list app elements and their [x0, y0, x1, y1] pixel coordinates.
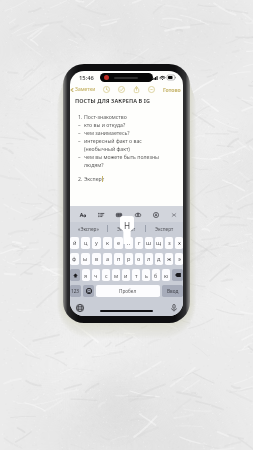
staticText: – [78, 153, 81, 160]
button[interactable]: Table [113, 209, 124, 220]
button[interactable]: Change keyboard [74, 302, 85, 313]
button[interactable]: ж [165, 253, 173, 265]
button[interactable]: н [125, 237, 133, 249]
staticText: л [147, 255, 151, 263]
staticText: – [78, 137, 81, 144]
button[interactable]: д [155, 253, 163, 265]
staticText: а [106, 255, 110, 263]
button[interactable]: я [82, 269, 90, 281]
button[interactable]: л [145, 253, 153, 265]
button[interactable]: а [103, 253, 112, 265]
button[interactable]: ш [145, 237, 153, 249]
button[interactable]: «Экспер» [70, 222, 107, 235]
button[interactable]: м [112, 269, 120, 281]
staticText: ы [83, 255, 88, 263]
button[interactable]: Backspace [172, 269, 183, 281]
button[interactable]: Готово [162, 85, 182, 94]
staticText: е [117, 239, 121, 247]
button[interactable]: Ввод [162, 285, 183, 297]
button[interactable]: у [92, 237, 101, 249]
staticText: чем вы можете быть полезны [84, 153, 160, 160]
staticText: 15:46 [79, 74, 94, 82]
button[interactable]: т [132, 269, 140, 281]
staticText: с [105, 272, 108, 279]
button[interactable]: Share [132, 85, 141, 94]
staticText: ш [146, 239, 152, 247]
button[interactable]: Text format [77, 209, 88, 220]
button[interactable]: в [92, 253, 101, 265]
button[interactable]: Checklist [95, 209, 106, 220]
staticText: «Экспер» [78, 226, 99, 232]
staticText: людям? [84, 161, 104, 168]
button[interactable]: Shift [70, 269, 80, 281]
staticText: х [178, 239, 181, 247]
button[interactable]: Emoji [83, 285, 94, 297]
staticText: в [95, 255, 99, 263]
button[interactable]: г [135, 237, 143, 249]
staticText: Эксперт [155, 226, 174, 232]
staticText: ф [72, 255, 77, 263]
staticText: ц [84, 239, 88, 247]
staticText: н [127, 239, 131, 247]
staticText: 123 [71, 288, 80, 294]
button[interactable]: Эксперт [146, 222, 183, 235]
button[interactable]: More options [147, 85, 156, 94]
staticText: з [168, 239, 171, 247]
button[interactable]: Checklist [117, 85, 126, 94]
button[interactable]: ф [70, 253, 79, 265]
button[interactable]: п [114, 253, 123, 265]
button[interactable]: Dictation [168, 302, 179, 313]
button[interactable]: Camera [132, 209, 143, 220]
staticText: т [135, 272, 138, 279]
staticText: у [95, 239, 98, 247]
staticText: к [106, 239, 109, 247]
staticText: Пробел [119, 288, 137, 294]
button[interactable]: з [165, 237, 173, 249]
button[interactable]: х [175, 237, 183, 249]
staticText: интересный факт о вас [84, 137, 142, 144]
staticText: Н [124, 220, 131, 231]
staticText: кто вы и откуда? [84, 121, 126, 128]
staticText: э [178, 255, 181, 263]
staticText: 1. [78, 113, 83, 120]
button[interactable]: о [135, 253, 143, 265]
staticText: 2. [78, 175, 83, 182]
button[interactable]: Undo [102, 85, 111, 94]
button[interactable]: й [70, 237, 79, 249]
button[interactable]: Эксперт [108, 222, 145, 235]
staticText: – [78, 121, 81, 128]
button[interactable]: э [175, 253, 183, 265]
staticText: й [73, 239, 77, 247]
staticText: я [84, 272, 88, 279]
staticText: Эксперт [117, 226, 136, 232]
staticText: Пост-знакомство [84, 113, 127, 120]
button[interactable]: щ [155, 237, 163, 249]
button[interactable]: Пробел [96, 285, 160, 297]
staticText: д [157, 255, 161, 263]
button[interactable]: ц [81, 237, 90, 249]
button[interactable]: Close keyboard [168, 209, 179, 220]
button[interactable]: ь [142, 269, 150, 281]
staticText: г [138, 239, 141, 247]
button[interactable]: 123 [70, 285, 81, 297]
staticText: б [154, 272, 158, 279]
button[interactable]: ч [92, 269, 100, 281]
staticText: ж [167, 255, 172, 263]
button[interactable]: и [122, 269, 130, 281]
staticText: р [127, 255, 131, 263]
staticText: ПОСТЫ ДЛЯ ЗАКРЕПА В IG [75, 97, 151, 104]
button[interactable]: б [152, 269, 160, 281]
button[interactable]: р [125, 253, 133, 265]
staticText: – [78, 129, 81, 136]
button[interactable]: с [102, 269, 110, 281]
button[interactable]: ю [162, 269, 170, 281]
staticText: ь [145, 272, 148, 279]
staticText: щ [156, 239, 162, 247]
button[interactable]: Markup [150, 209, 161, 220]
staticText: Эксперт [84, 175, 105, 182]
staticText: Заметки [75, 86, 96, 93]
button[interactable]: Заметки [70, 85, 97, 94]
button[interactable]: к [103, 237, 112, 249]
button[interactable]: ы [81, 253, 90, 265]
button[interactable]: е [114, 237, 123, 249]
